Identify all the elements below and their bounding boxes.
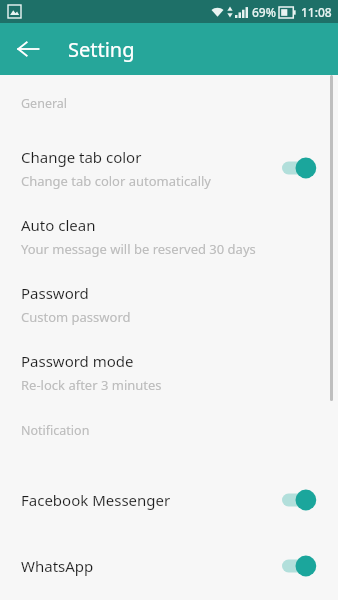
button[interactable]: Change tab color <box>0 134 338 202</box>
button[interactable]: Toggle <box>282 155 322 181</box>
staticText: Custom password <box>21 308 131 326</box>
staticText: Setting <box>68 36 135 63</box>
staticText: Re-lock after 3 minutes <box>21 376 162 394</box>
staticText: 69% <box>252 4 276 20</box>
staticText: Change tab color <box>21 147 142 167</box>
button[interactable]: Password mode <box>0 338 338 406</box>
button[interactable]: Toggle <box>282 487 322 513</box>
staticText: Notification <box>21 422 90 439</box>
staticText: Change tab color automatically <box>21 172 211 190</box>
staticText: Your message will be reserved 30 days <box>21 240 256 258</box>
button[interactable]: Auto clean <box>0 202 338 270</box>
button[interactable]: Facebook Messenger <box>0 467 338 533</box>
staticText: Auto clean <box>21 215 96 235</box>
staticText: Password mode <box>21 351 134 371</box>
staticText: General <box>21 95 68 112</box>
button[interactable]: Back <box>6 27 50 71</box>
staticText: 11:08 <box>301 4 332 20</box>
staticText: Facebook Messenger <box>21 490 171 510</box>
staticText: WhatsApp <box>21 556 94 576</box>
button[interactable]: Toggle <box>282 553 322 579</box>
button[interactable]: WhatsApp <box>0 533 338 599</box>
button[interactable]: Password <box>0 270 338 338</box>
staticText: Password <box>21 283 89 303</box>
